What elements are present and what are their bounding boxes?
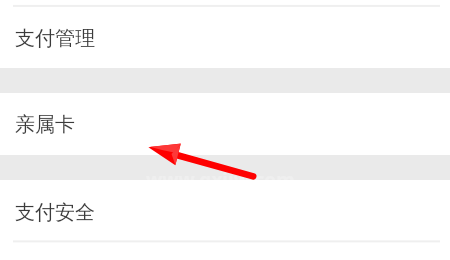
staticText: 支付安全 xyxy=(15,200,95,225)
staticText: 支付管理 xyxy=(15,26,95,51)
button[interactable]: 支付安全 xyxy=(0,180,450,260)
staticText: www.gxjjw.com xyxy=(146,167,295,180)
staticText: 亲属卡 xyxy=(15,112,75,137)
other: Pointer annotation xyxy=(0,0,450,260)
button[interactable]: 亲属卡 xyxy=(0,93,450,155)
button[interactable]: 支付管理 xyxy=(0,0,450,68)
